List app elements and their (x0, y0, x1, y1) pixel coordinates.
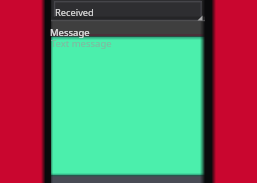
staticText: Received (55, 6, 94, 19)
button[interactable]: Text message input (51, 37, 205, 175)
staticText: Message (50, 26, 90, 39)
button[interactable]: Received message type (51, 0, 205, 21)
staticText: Text message (51, 37, 112, 50)
